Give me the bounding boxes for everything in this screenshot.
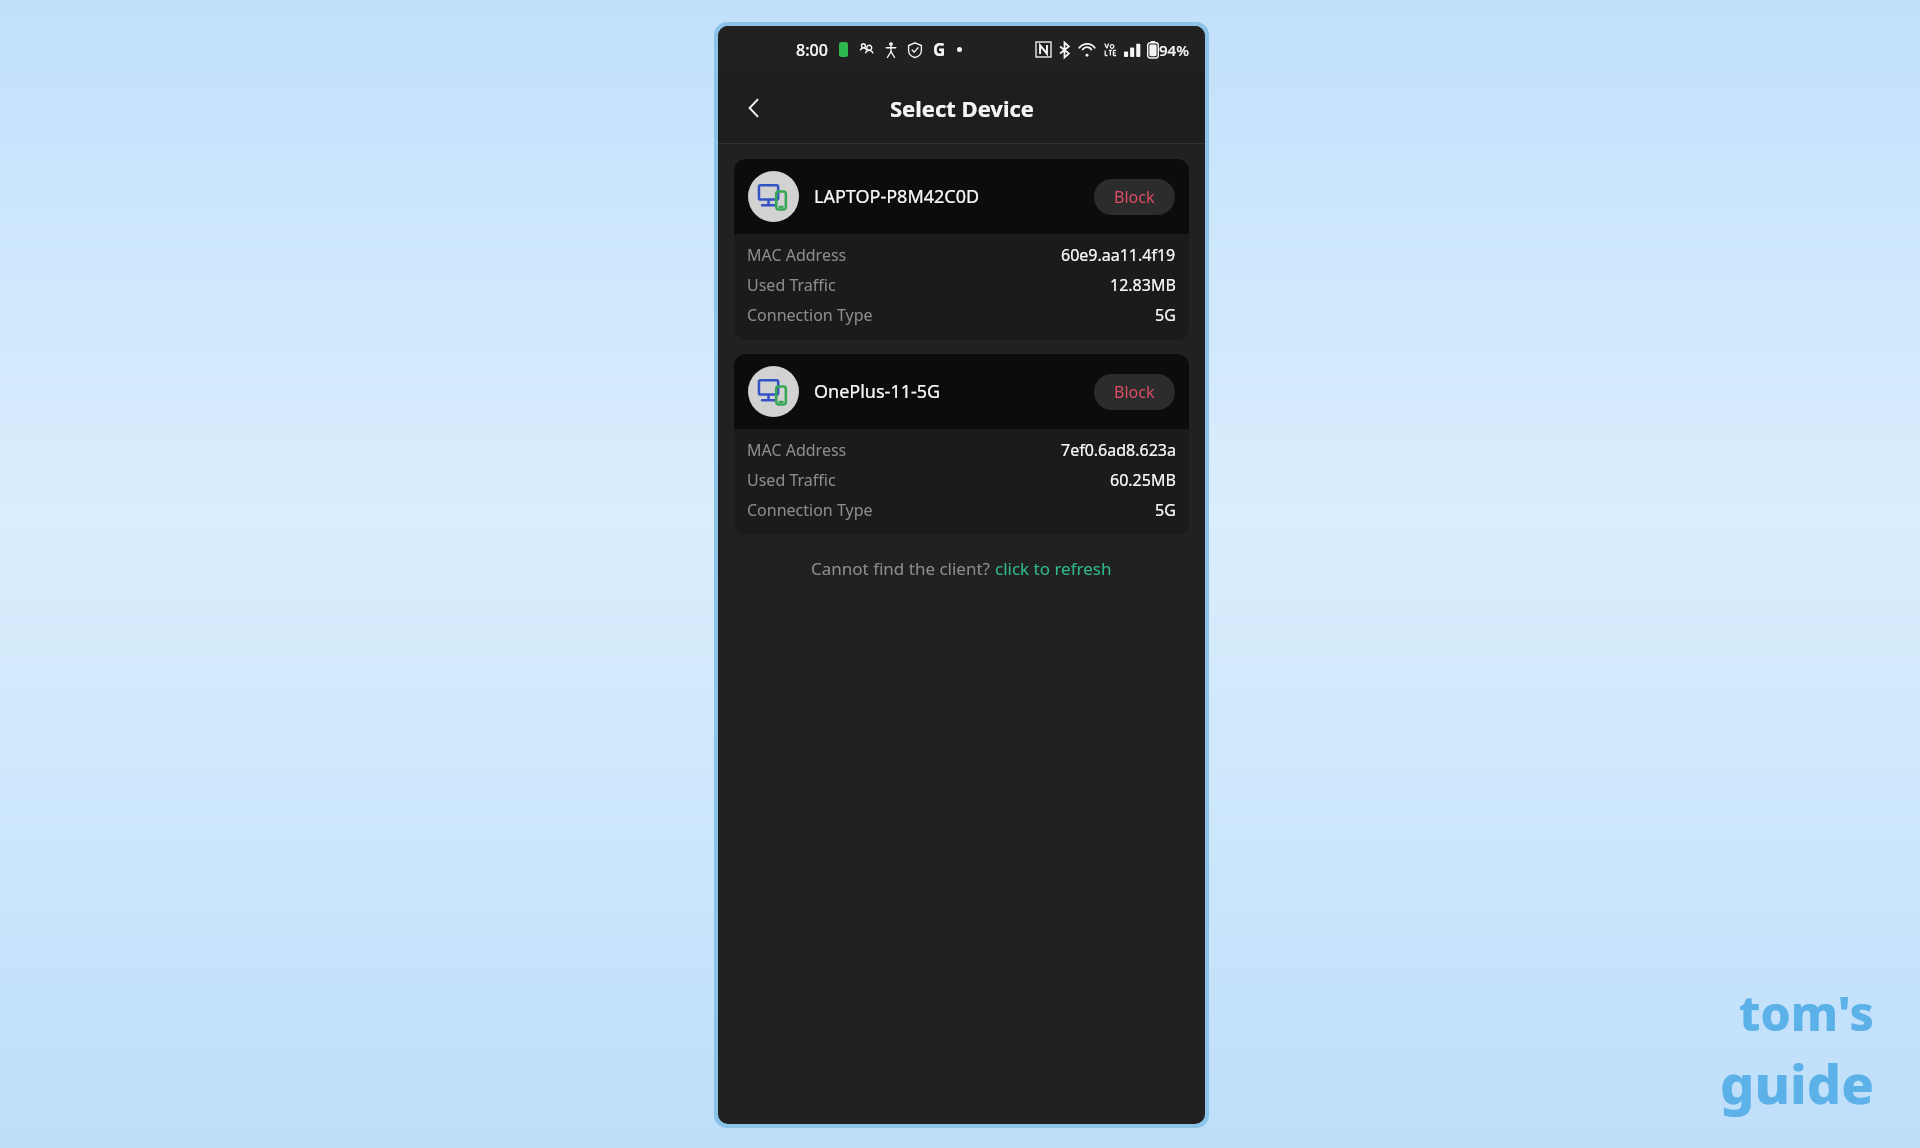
staticText: Block <box>1114 381 1155 403</box>
staticText: Used Traffic <box>747 274 836 296</box>
staticText: guide <box>1720 1046 1874 1120</box>
staticText: 8:00 <box>796 39 828 61</box>
staticText: OnePlus-11-5G <box>814 379 1094 404</box>
staticText: Used Traffic <box>747 469 836 491</box>
staticText: LAPTOP-P8M42C0D <box>814 184 1094 209</box>
staticText: 12.83MB <box>1110 274 1176 296</box>
button[interactable]: Block <box>1094 374 1175 410</box>
staticText: 5G <box>1155 304 1176 326</box>
staticText: Connection Type <box>747 304 873 326</box>
staticText: 60e9.aa11.4f19 <box>1061 244 1176 266</box>
button[interactable]: click to refresh <box>995 557 1112 580</box>
staticText: Block <box>1114 186 1155 208</box>
staticText: click to refresh <box>995 557 1112 580</box>
staticText: 94% <box>1159 40 1189 60</box>
button[interactable]: LAPTOP-P8M42C0D <box>734 159 1189 340</box>
staticText: Connection Type <box>747 499 873 521</box>
button[interactable]: OnePlus-11-5G <box>734 354 1189 535</box>
staticText: G <box>933 38 946 61</box>
staticText: 60.25MB <box>1110 469 1176 491</box>
staticText: 5G <box>1155 499 1176 521</box>
staticText: Cannot find the client? <box>811 557 995 580</box>
button[interactable]: Back <box>728 82 780 134</box>
staticText: MAC Address <box>747 244 847 266</box>
button[interactable]: Block <box>1094 179 1175 215</box>
staticText: tom's <box>1739 980 1874 1045</box>
staticText: 7ef0.6ad8.623a <box>1061 439 1176 461</box>
staticText: MAC Address <box>747 439 847 461</box>
staticText: Select Device <box>890 93 1034 123</box>
